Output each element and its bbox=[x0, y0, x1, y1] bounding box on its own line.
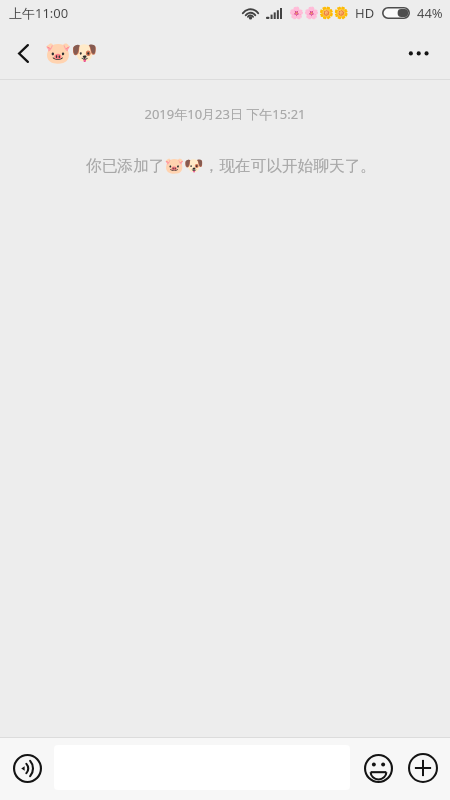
staticText: 44% bbox=[417, 4, 443, 22]
staticText: 你已添加了🐷🐶，现在可以开始聊天了。 bbox=[6, 156, 450, 176]
staticText: HD bbox=[355, 4, 375, 22]
staticText: 上午11:00 bbox=[9, 4, 69, 22]
staticText: 2019年10月23日 下午15:21 bbox=[0, 105, 450, 123]
staticText: 🌸🌸🌼🌼 bbox=[289, 6, 349, 20]
staticText: 🐷🐶 bbox=[45, 41, 98, 66]
button[interactable]: Emoji bbox=[355, 745, 401, 791]
button[interactable]: Voice message bbox=[4, 745, 50, 791]
button[interactable]: More bbox=[400, 745, 446, 791]
button[interactable]: Back bbox=[0, 26, 44, 80]
button[interactable]: More options bbox=[394, 26, 442, 80]
